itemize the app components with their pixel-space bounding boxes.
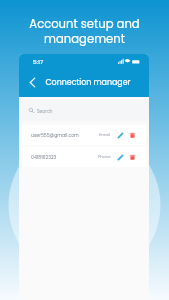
staticText: 0418162323 [31,154,57,160]
staticText: Connection manager [38,77,138,88]
button[interactable]: Edit Email [117,132,124,139]
button[interactable]: Edit Phone [117,154,124,161]
staticText: Phone [98,154,111,160]
staticText: user555@gmail.com [31,132,79,138]
button[interactable]: Delete Phone [129,154,136,161]
staticText: Email [99,132,111,138]
button[interactable]: Search [19,100,149,121]
staticText: Account setup and management [0,16,169,47]
button[interactable]: user555@gmail.com [22,125,146,145]
button[interactable]: 0418162323 [22,147,146,167]
button[interactable]: Back [23,73,42,92]
staticText: 5:17 [33,58,44,66]
staticText: Search [37,108,53,114]
button[interactable]: Delete Email [129,132,136,139]
